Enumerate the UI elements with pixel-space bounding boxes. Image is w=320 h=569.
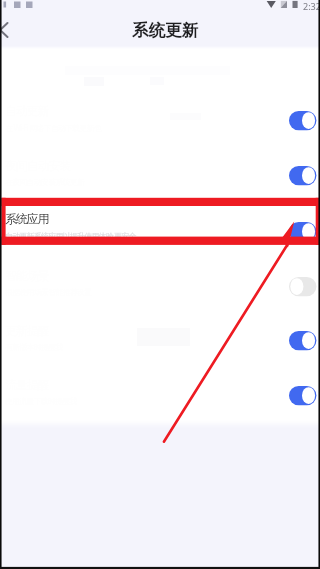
staticText: 系统应用 <box>5 211 49 226</box>
button[interactable]: 夜间自动安装 <box>0 155 320 199</box>
button[interactable]: 夜间自动安装 enabled <box>289 166 317 186</box>
button[interactable]: 自动更新 enabled <box>289 111 317 131</box>
button[interactable]: 更新提醒 <box>0 320 320 364</box>
button[interactable]: 系统应用 <box>0 208 320 252</box>
button[interactable]: 智能场景 <box>0 265 320 309</box>
staticText: 系统更新 <box>132 20 198 41</box>
button[interactable]: 更新提醒 enabled <box>289 331 317 351</box>
staticText: 自动更新系统应用以提升使用体验 更安全 <box>5 230 136 241</box>
button[interactable]: 自动更新 <box>0 100 320 144</box>
button[interactable]: 系统应用 enabled <box>289 222 317 242</box>
staticText: 2:32 <box>303 0 320 12</box>
button[interactable]: 流量提醒 <box>0 374 320 418</box>
button[interactable]: 流量提醒 enabled <box>289 386 317 406</box>
button[interactable]: 智能场景 disabled <box>289 277 317 297</box>
button[interactable]: Back <box>0 18 15 42</box>
